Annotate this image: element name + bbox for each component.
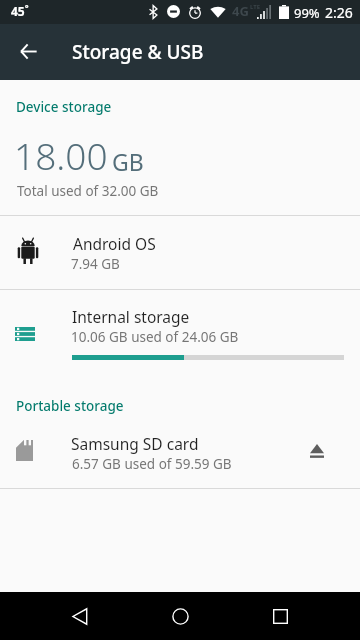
staticText: Total used of 32.00 GB (17, 182, 159, 200)
staticText: 4G (232, 2, 249, 20)
staticText: 45˚ (11, 3, 29, 19)
staticText: Samsung SD card (71, 433, 199, 454)
button[interactable]: Recent apps (240, 592, 320, 640)
staticText: 7.94 GB (71, 255, 120, 273)
staticText: 2:26 (325, 3, 353, 22)
staticText: LTE (250, 3, 261, 11)
staticText: 6.57 GB used of 59.59 GB (72, 455, 232, 473)
staticText: Storage & USB (72, 39, 204, 65)
button[interactable]: Android OS (0, 216, 360, 289)
staticText: 10.06 GB used of 24.06 GB (71, 328, 239, 346)
staticText: Android OS (73, 233, 156, 254)
button[interactable]: Samsung SD card (0, 420, 360, 488)
staticText: GB (112, 146, 144, 177)
button[interactable]: Eject (293, 427, 341, 475)
staticText: Portable storage (16, 397, 124, 415)
staticText: Internal storage (72, 306, 190, 327)
button[interactable]: Back (40, 592, 120, 640)
staticText: 18.00 (14, 130, 108, 180)
button[interactable]: Navigate up (4, 28, 52, 75)
staticText: 99% (294, 4, 320, 22)
staticText: Device storage (16, 98, 112, 116)
button[interactable]: Home (140, 592, 220, 640)
button[interactable]: Internal storage (0, 290, 360, 370)
